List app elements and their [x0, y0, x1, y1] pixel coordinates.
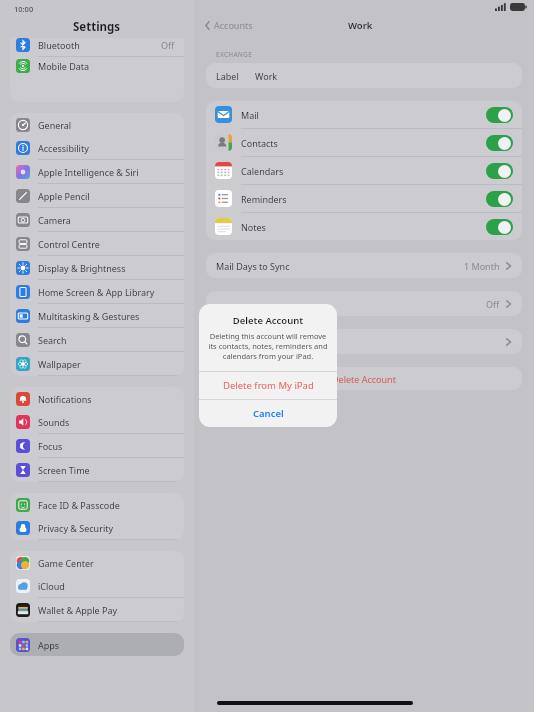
button[interactable]: Toggle on [486, 163, 513, 179]
button[interactable]: Camera [10, 208, 184, 232]
button[interactable]: Delete Account [206, 367, 522, 390]
button[interactable]: Toggle on [486, 135, 513, 151]
button[interactable]: Face ID & Passcode [10, 493, 184, 516]
staticText: Apple Pencil [38, 190, 90, 202]
button[interactable]: Mobile Data [10, 57, 184, 74]
staticText: Control Centre [38, 238, 100, 250]
staticText: Focus [38, 440, 63, 452]
button[interactable]: iCloud [10, 574, 184, 598]
staticText: Wallet & Apple Pay [38, 604, 118, 616]
staticText: Display & Brightness [38, 262, 126, 274]
staticText: iCloud [38, 580, 65, 592]
button[interactable]: Delete from My iPad [199, 372, 337, 399]
staticText: Face ID & Passcode [38, 499, 120, 511]
button[interactable]: Off [216, 291, 512, 316]
staticText: Reminders [241, 193, 287, 205]
button[interactable]: Bluetooth [10, 38, 184, 57]
staticText: Game Center [38, 557, 94, 569]
button[interactable]: Privacy & Security [10, 516, 184, 540]
button[interactable]: Toggle on [486, 107, 513, 123]
button[interactable]: Apple Intelligence & Siri [10, 160, 184, 184]
button[interactable]: Sounds [10, 410, 184, 434]
button[interactable]: Apple Pencil [10, 184, 184, 208]
staticText: Screen Time [38, 464, 90, 476]
staticText: Work [348, 19, 373, 32]
staticText: Home Screen & App Library [38, 286, 155, 298]
staticText: Accounts [214, 19, 253, 31]
staticText: Delete Account [208, 314, 328, 327]
staticText: 1 Month [464, 260, 500, 272]
staticText: 10:00 [14, 4, 34, 14]
button[interactable] [216, 329, 512, 354]
staticText: Label [216, 70, 239, 82]
staticText: Sounds [38, 416, 70, 428]
staticText: Apple Intelligence & Siri [38, 166, 139, 178]
button[interactable]: Calendars [206, 157, 522, 185]
button[interactable]: Apps [10, 633, 184, 656]
staticText: Wallpaper [38, 358, 81, 370]
button[interactable]: Mail Days to Sync [216, 253, 512, 278]
button[interactable]: Toggle on [486, 219, 513, 235]
button[interactable]: Wallet & Apple Pay [10, 598, 184, 622]
button[interactable]: Accounts [202, 16, 256, 34]
staticText: Search [38, 334, 67, 346]
staticText: Work [255, 70, 278, 82]
staticText: Multitasking & Gestures [38, 310, 140, 322]
staticText: Mobile Data [38, 60, 90, 72]
button[interactable]: Search [10, 328, 184, 352]
button[interactable]: Contacts [206, 129, 522, 157]
button[interactable]: Notifications [10, 387, 184, 410]
staticText: Apps [38, 639, 60, 651]
staticText: Mail [241, 109, 259, 121]
staticText: Contacts [241, 137, 278, 149]
button[interactable]: General [10, 113, 184, 136]
button[interactable]: Label [216, 63, 512, 88]
staticText: EXCHANGE [216, 50, 253, 59]
button[interactable]: Notes [206, 213, 522, 240]
button[interactable]: Control Centre [10, 232, 184, 256]
button[interactable]: Toggle on [486, 191, 513, 207]
staticText: Off [161, 39, 175, 51]
button[interactable]: Cancel [199, 400, 337, 427]
button[interactable]: Focus [10, 434, 184, 458]
staticText: General [38, 119, 72, 131]
button[interactable]: Accessibility [10, 136, 184, 160]
staticText: Deleting this account will remove its co… [208, 331, 328, 361]
staticText: Mail Days to Sync [216, 260, 290, 272]
button[interactable]: Home Screen & App Library [10, 280, 184, 304]
staticText: Notifications [38, 393, 92, 405]
staticText: Cancel [253, 407, 284, 420]
staticText: Calendars [241, 165, 284, 177]
staticText: Off [486, 298, 500, 310]
staticText: Camera [38, 214, 71, 226]
button[interactable]: Mail [206, 101, 522, 129]
button[interactable]: Wallpaper [10, 352, 184, 376]
staticText: Notes [241, 221, 266, 233]
staticText: Privacy & Security [38, 522, 114, 534]
button[interactable]: Game Center [10, 551, 184, 574]
staticText: Delete from My iPad [223, 379, 314, 392]
button[interactable]: Reminders [206, 185, 522, 213]
staticText: Delete Account [332, 373, 396, 385]
button[interactable]: Multitasking & Gestures [10, 304, 184, 328]
staticText: Bluetooth [38, 39, 80, 51]
staticText: Settings [73, 19, 121, 35]
staticText: Accessibility [38, 142, 89, 154]
button[interactable]: Display & Brightness [10, 256, 184, 280]
button[interactable]: Screen Time [10, 458, 184, 482]
